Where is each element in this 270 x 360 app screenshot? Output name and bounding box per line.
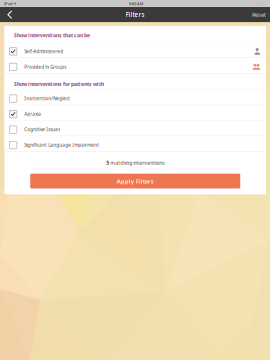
- staticText: 5: [106, 159, 109, 166]
- button[interactable]: Apraxia: [4, 105, 266, 121]
- staticText: Reset: [252, 11, 266, 18]
- button[interactable]: Back: [0, 7, 18, 22]
- staticText: Provided in Groups: [24, 64, 66, 70]
- staticText: Apply Filters: [117, 177, 154, 185]
- button[interactable]: Significant Language Impairment: [4, 136, 266, 152]
- button[interactable]: Apply Filters: [30, 174, 240, 189]
- staticText: matching interventions: [109, 159, 164, 166]
- button[interactable]: Inattention/Neglect: [4, 90, 266, 105]
- staticText: Inattention/Neglect: [24, 95, 70, 102]
- button[interactable]: Reset: [246, 7, 270, 22]
- staticText: 9:43 AM: [128, 1, 143, 6]
- button[interactable]: Provided in Groups: [4, 58, 266, 73]
- staticText: Cognitive Issues: [24, 126, 60, 133]
- button[interactable]: Cognitive Issues: [4, 121, 266, 136]
- staticText: Apraxia: [24, 111, 41, 117]
- staticText: ▾: [13, 1, 16, 6]
- staticText: iPad: [4, 1, 13, 6]
- button[interactable]: Self-Administered: [4, 42, 266, 58]
- staticText: Significant Language Impairment: [24, 142, 99, 148]
- staticText: Filters: [125, 10, 144, 19]
- staticText: Show interventions for patients with: [14, 81, 104, 88]
- staticText: Self-Administered: [24, 48, 63, 54]
- staticText: Show interventions that can be: [14, 32, 90, 39]
